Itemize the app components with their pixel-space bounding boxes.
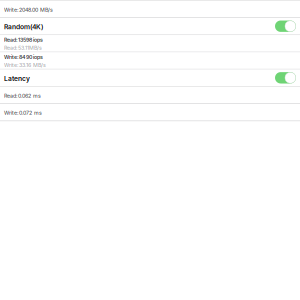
staticText: Write:33.16 MB/s [4, 62, 46, 68]
button[interactable]: Latency [0, 70, 300, 86]
staticText: Write:0.072 ms [4, 110, 42, 116]
staticText: Read:0.062 ms [4, 92, 41, 99]
button[interactable]: Random(4K) [0, 18, 300, 34]
staticText: Read:13598 iops [4, 37, 43, 43]
staticText: Write:2048.00 MB/s [4, 6, 53, 13]
staticText: Write:8490 iops [4, 54, 43, 60]
staticText: Read:53.11MB/s [4, 45, 42, 51]
staticText: Random(4K) [4, 23, 43, 31]
staticText: Latency [4, 74, 30, 83]
